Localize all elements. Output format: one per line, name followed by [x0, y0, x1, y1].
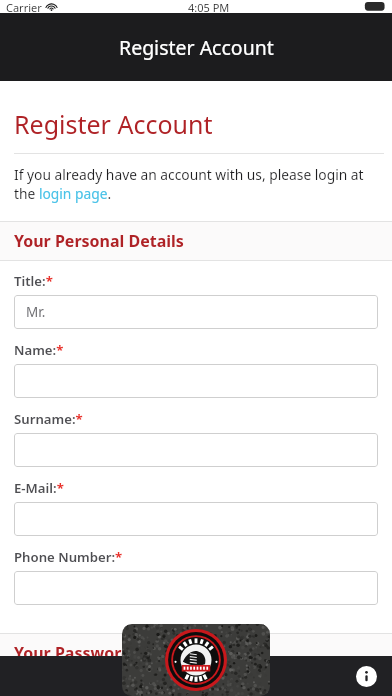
button[interactable]: If you already have an account with us, … [14, 165, 380, 203]
staticText: Name:* [14, 341, 64, 359]
staticText: E-Mail:* [14, 479, 64, 497]
staticText: Your Password [14, 642, 132, 664]
staticText: Register Account [14, 107, 213, 141]
staticText: Mr. [26, 303, 46, 321]
button[interactable] [14, 571, 378, 605]
button[interactable] [14, 364, 378, 398]
staticText: Surname:* [14, 410, 83, 428]
button[interactable]: Mr. [14, 295, 378, 329]
staticText: Title:* [14, 272, 53, 290]
staticText: Phone Number:* [14, 548, 123, 566]
button[interactable] [14, 433, 378, 467]
button[interactable] [14, 502, 378, 536]
staticText: Register Account [119, 34, 274, 61]
staticText: Your Personal Details [14, 230, 184, 252]
staticText: 4:05 PM [188, 0, 230, 13]
button[interactable]: Pegasus Pizza logo [122, 624, 270, 696]
staticText: Carrier [6, 0, 42, 13]
button[interactable]: Information [350, 660, 382, 692]
